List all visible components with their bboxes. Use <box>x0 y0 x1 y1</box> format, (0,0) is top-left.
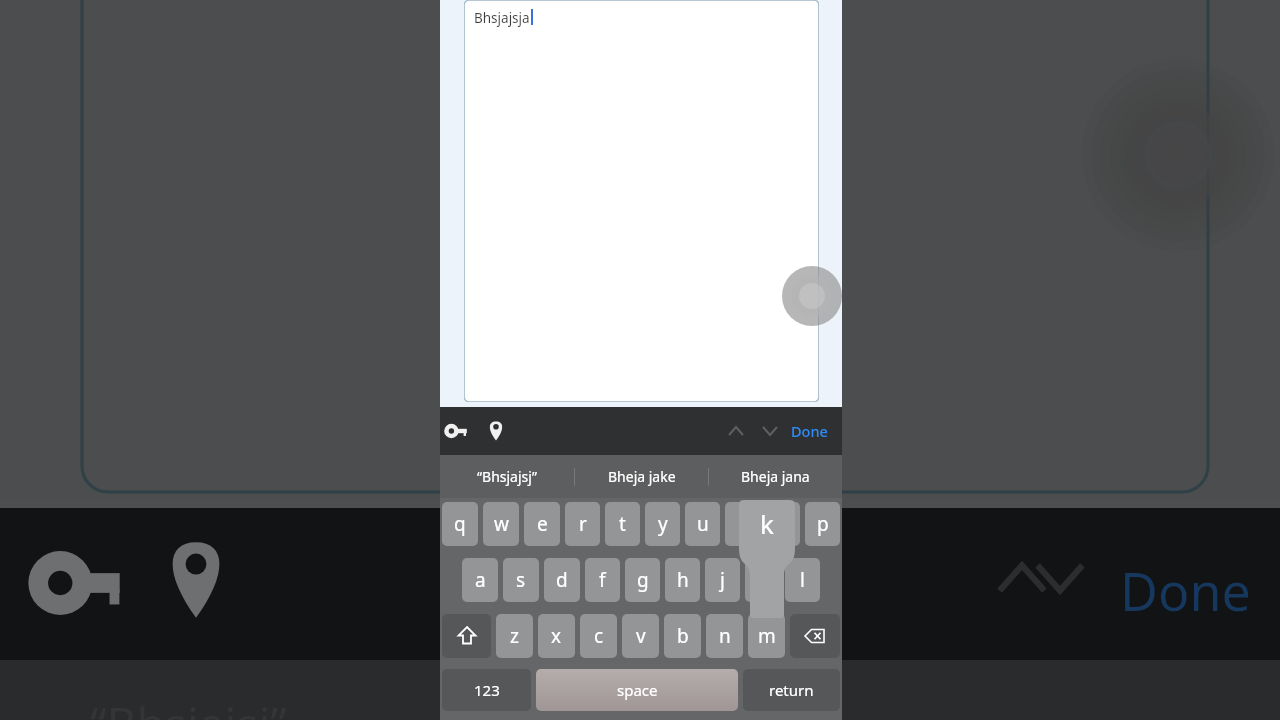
staticText: g <box>637 567 649 593</box>
button[interactable]: q <box>442 502 478 546</box>
staticText: p <box>817 511 829 537</box>
button[interactable]: h <box>665 558 700 602</box>
button[interactable]: Next field <box>753 411 787 451</box>
staticText: l <box>800 567 805 593</box>
staticText: m <box>758 623 776 649</box>
button[interactable]: 123 <box>442 669 531 711</box>
staticText: Bheja jana <box>741 467 810 486</box>
button[interactable]: n <box>706 614 743 658</box>
staticText: Bheja jak <box>620 692 817 720</box>
staticText: Done <box>1120 555 1251 626</box>
staticText: x <box>551 623 562 649</box>
button[interactable]: d <box>544 558 580 602</box>
button[interactable]: e <box>524 502 560 546</box>
button[interactable]: o <box>765 502 800 546</box>
staticText: space <box>617 680 658 700</box>
staticText: u <box>697 511 709 537</box>
button[interactable]: i <box>725 502 760 546</box>
button[interactable]: Previous field <box>719 411 753 451</box>
staticText: v <box>636 623 646 649</box>
staticText: Bheja jake <box>608 467 676 486</box>
button[interactable]: y <box>645 502 680 546</box>
staticText: n <box>719 623 731 649</box>
staticText: d <box>556 567 568 593</box>
button[interactable]: Location <box>479 411 513 451</box>
staticText: “Bhsjajsj” <box>477 467 537 486</box>
staticText: 123 <box>474 680 500 700</box>
button[interactable]: “Bhsjajsj” <box>440 455 574 498</box>
button[interactable]: r <box>565 502 600 546</box>
button[interactable]: b <box>664 614 701 658</box>
button[interactable]: s <box>503 558 539 602</box>
button[interactable]: Passwords <box>440 411 474 451</box>
button[interactable]: m <box>748 614 785 658</box>
staticText: t <box>619 511 626 537</box>
button[interactable]: t <box>605 502 640 546</box>
staticText: k <box>760 506 774 541</box>
staticText: Bhsjajsja <box>474 9 530 27</box>
button[interactable]: Backspace <box>790 614 840 658</box>
staticText: w <box>494 511 509 537</box>
button[interactable]: u <box>685 502 720 546</box>
button[interactable]: k <box>745 558 780 602</box>
button[interactable]: x <box>538 614 575 658</box>
staticText: q <box>454 511 466 537</box>
button[interactable]: c <box>580 614 617 658</box>
staticText: r <box>579 511 587 537</box>
staticText: b <box>677 623 689 649</box>
button[interactable]: l <box>785 558 820 602</box>
staticText: e <box>537 511 548 537</box>
button[interactable]: a <box>462 558 498 602</box>
button[interactable]: Bhsjajsja <box>464 0 819 402</box>
button[interactable]: g <box>625 558 660 602</box>
button[interactable]: p <box>805 502 840 546</box>
button[interactable]: Done <box>791 421 828 441</box>
staticText: j <box>720 567 725 593</box>
staticText: f <box>599 567 606 593</box>
staticText: Done <box>791 421 828 441</box>
staticText: y <box>658 511 668 537</box>
staticText: s <box>516 567 526 593</box>
staticText: return <box>769 680 814 700</box>
button[interactable]: z <box>496 614 533 658</box>
staticText: z <box>510 623 519 649</box>
staticText: h <box>677 567 689 593</box>
button[interactable]: return <box>743 669 840 711</box>
button[interactable]: Bheja jake <box>575 455 708 498</box>
button[interactable]: v <box>622 614 659 658</box>
staticText: a <box>475 567 486 593</box>
button[interactable]: f <box>585 558 620 602</box>
button[interactable]: j <box>705 558 740 602</box>
button[interactable]: w <box>483 502 519 546</box>
staticText: c <box>594 623 604 649</box>
button[interactable]: Shift <box>442 614 491 658</box>
button[interactable]: Bheja jana <box>709 455 842 498</box>
button[interactable]: space <box>536 669 738 711</box>
